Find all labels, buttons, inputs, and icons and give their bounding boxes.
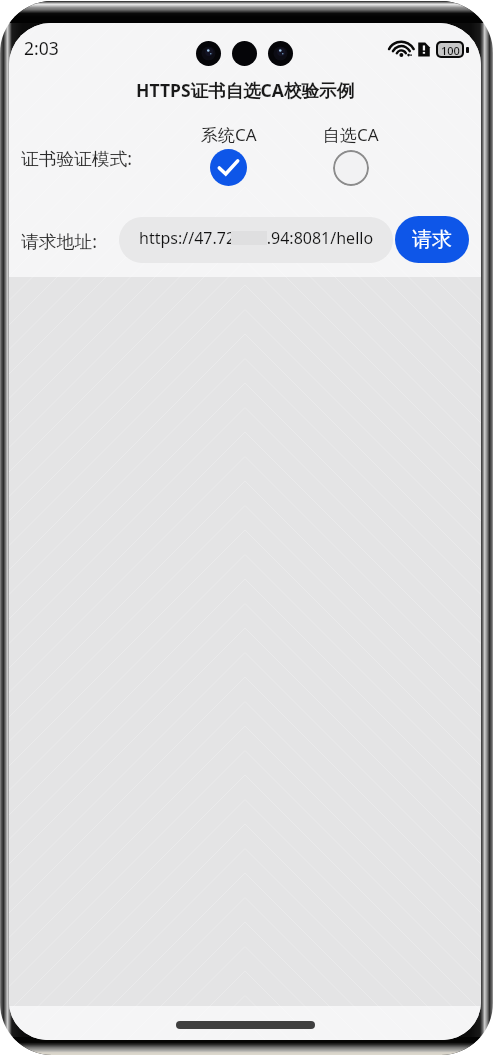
button[interactable]: Custom CA — [333, 150, 369, 186]
button[interactable]: Home — [176, 1021, 315, 1029]
button[interactable]: 请求 — [395, 216, 469, 263]
staticText: 证书验证模式: — [21, 146, 132, 170]
staticText: 2:03 — [24, 36, 59, 60]
other: No SIM — [418, 41, 430, 58]
button[interactable]: 系统CA — [201, 123, 257, 146]
staticText: 请求地址: — [21, 229, 97, 253]
staticText: 请求 — [412, 227, 452, 252]
staticText: https://47.72.000.94:8081/hello — [139, 227, 374, 249]
other: Wi-Fi — [393, 41, 412, 58]
button[interactable]: https://47.72.000.94:8081/hello — [119, 217, 393, 263]
staticText: 100 — [441, 43, 460, 56]
button[interactable]: System CA selected — [210, 149, 247, 186]
staticText: HTTPS证书自选CA校验示例 — [9, 78, 481, 102]
button[interactable]: 自选CA — [323, 123, 379, 146]
